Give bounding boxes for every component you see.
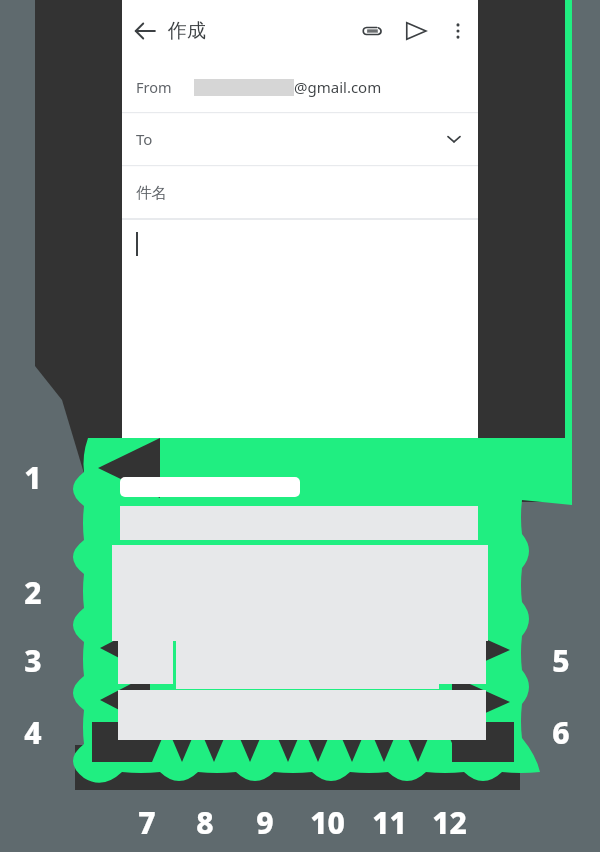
button[interactable]: Themes: [325, 505, 357, 537]
button[interactable]: q: [114, 544, 147, 592]
staticText: 9: [256, 802, 274, 843]
button[interactable]: s: [151, 596, 184, 644]
button[interactable]: To: [122, 113, 478, 165]
button[interactable]: z: [169, 648, 203, 696]
staticText: 2: [24, 572, 42, 613]
staticText: 件名: [136, 183, 167, 203]
button[interactable]: More: [394, 505, 426, 537]
staticText: 5: [552, 640, 570, 681]
button[interactable]: Voice input: [444, 505, 476, 537]
button[interactable]: Cursor right: [400, 700, 433, 748]
button[interactable]: v: [283, 648, 317, 696]
button[interactable]: u: [338, 544, 372, 592]
button[interactable]: Attach file: [350, 9, 394, 53]
button[interactable]: Enter: [437, 700, 486, 748]
button[interactable]: i: [376, 544, 410, 592]
button[interactable]: x: [207, 648, 241, 696]
button[interactable]: w: [151, 544, 184, 592]
button[interactable]: Shift: [114, 648, 165, 696]
button[interactable]: Clipboard: [225, 505, 257, 537]
button[interactable]: a: [114, 596, 147, 644]
staticText: 7: [138, 802, 156, 843]
button[interactable]: More options: [438, 11, 478, 51]
button[interactable]: p: [452, 544, 486, 592]
button[interactable]: Cursor left: [363, 700, 396, 748]
staticText: To: [136, 129, 153, 149]
staticText: @gmail.com: [294, 77, 382, 97]
button[interactable]: Send: [394, 9, 438, 53]
button[interactable]: 。: [326, 700, 359, 748]
button[interactable]: 件名: [122, 166, 478, 219]
staticText: 作成: [168, 19, 206, 43]
button[interactable]: e: [188, 544, 221, 592]
staticText: 8: [196, 802, 214, 843]
staticText: 10: [310, 802, 345, 843]
button[interactable]: y: [300, 544, 334, 592]
button[interactable]: t: [262, 544, 296, 592]
button[interactable]: Input mode: [114, 700, 163, 748]
button[interactable]: c: [245, 648, 279, 696]
button[interactable]: b: [321, 648, 355, 696]
button[interactable]: o: [414, 544, 448, 592]
button[interactable]: Settings: [275, 505, 307, 537]
staticText: 1: [24, 457, 42, 498]
button[interactable]: m: [397, 648, 431, 696]
button[interactable]: From: [122, 62, 478, 112]
button[interactable]: Emoji: [204, 700, 237, 748]
button[interactable]: n: [359, 648, 393, 696]
button[interactable]: 、: [167, 700, 200, 748]
button[interactable]: [122, 220, 478, 280]
button[interactable]: Back: [122, 8, 168, 54]
button[interactable]: Close toolbar: [122, 504, 156, 538]
button[interactable]: r: [225, 544, 258, 592]
button[interactable]: Stickers: [175, 505, 207, 537]
button[interactable]: Backspace: [435, 648, 486, 696]
staticText: 11: [372, 802, 407, 843]
button[interactable]: 日本語: [241, 700, 322, 748]
